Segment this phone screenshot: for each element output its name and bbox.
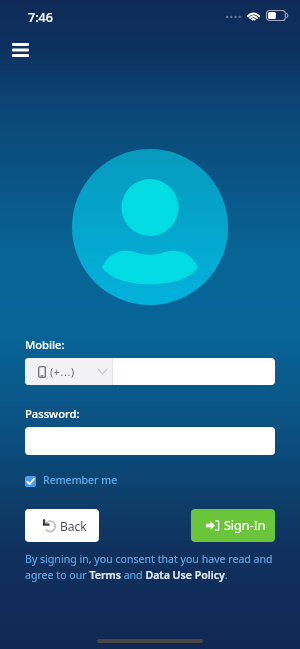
staticText: 7:46 <box>28 9 53 26</box>
staticText: Sign-In <box>224 517 266 534</box>
staticText: Remember me <box>43 473 118 487</box>
staticText: Back <box>60 518 87 534</box>
staticText: (+...) <box>50 365 75 379</box>
button[interactable]: Menu <box>5 35 35 65</box>
button[interactable]: Select country code <box>25 358 112 385</box>
button[interactable] <box>113 358 275 385</box>
button[interactable]: Back <box>25 509 99 542</box>
staticText: Password: <box>25 406 80 421</box>
button[interactable]: Sign-In <box>191 509 275 542</box>
button[interactable]: Remember me <box>25 471 118 489</box>
staticText: By signing in, you consent that you have… <box>25 552 275 582</box>
button[interactable] <box>25 427 275 455</box>
staticText: Mobile: <box>25 337 65 352</box>
